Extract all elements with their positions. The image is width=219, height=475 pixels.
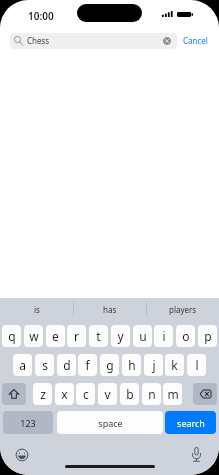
staticText: 10:00 — [28, 9, 54, 23]
button[interactable]: space — [57, 411, 163, 434]
button[interactable] — [10, 33, 177, 49]
staticText: Cancel — [183, 35, 208, 46]
staticText: b — [126, 386, 134, 402]
button[interactable]: o — [176, 325, 195, 347]
staticText: y — [117, 328, 124, 344]
staticText: 123 — [20, 417, 36, 429]
staticText: space — [98, 417, 123, 429]
button[interactable]: d — [57, 354, 76, 376]
button[interactable]: i — [154, 325, 173, 347]
staticText: c — [83, 386, 89, 402]
staticText: h — [128, 357, 136, 373]
button[interactable]: s — [35, 354, 54, 376]
button[interactable]: a — [13, 354, 32, 376]
staticText: a — [19, 357, 26, 373]
button[interactable]: q — [2, 325, 21, 347]
staticText: t — [96, 328, 101, 344]
button[interactable]: v — [98, 383, 117, 405]
staticText: w — [29, 328, 39, 344]
button[interactable]: Backspace — [193, 383, 217, 405]
button[interactable]: x — [55, 383, 74, 405]
staticText: has — [103, 304, 117, 315]
button[interactable]: Dictation — [190, 447, 203, 462]
button[interactable]: Shift — [2, 383, 26, 405]
staticText: j — [152, 357, 156, 373]
button[interactable]: y — [111, 325, 130, 347]
button[interactable]: players — [147, 298, 219, 320]
button[interactable]: u — [133, 325, 152, 347]
button[interactable]: g — [100, 354, 119, 376]
staticText: i — [162, 328, 166, 344]
button[interactable]: Clear text — [163, 37, 171, 45]
staticText: f — [85, 357, 90, 373]
staticText: q — [8, 328, 16, 344]
staticText: r — [74, 328, 79, 344]
button[interactable]: k — [165, 354, 184, 376]
button[interactable]: e — [46, 325, 65, 347]
staticText: s — [42, 357, 48, 373]
button[interactable]: r — [67, 325, 86, 347]
staticText: n — [148, 386, 156, 402]
button[interactable]: j — [144, 354, 163, 376]
staticText: Chess — [27, 35, 50, 46]
button[interactable]: has — [74, 298, 146, 320]
button[interactable]: search — [165, 411, 216, 434]
button[interactable]: Emoji — [15, 448, 29, 462]
staticText: e — [52, 328, 59, 344]
staticText: l — [195, 357, 199, 373]
staticText: d — [63, 357, 71, 373]
button[interactable]: n — [142, 383, 161, 405]
button[interactable]: is — [0, 298, 73, 320]
button[interactable]: t — [89, 325, 108, 347]
staticText: players — [169, 304, 197, 315]
staticText: z — [40, 386, 46, 402]
staticText: m — [167, 386, 179, 402]
button[interactable]: b — [120, 383, 139, 405]
button[interactable]: l — [187, 354, 206, 376]
staticText: p — [204, 328, 212, 344]
button[interactable]: Cancel — [183, 35, 208, 46]
button[interactable]: w — [24, 325, 43, 347]
staticText: search — [177, 417, 205, 429]
staticText: x — [61, 386, 68, 402]
staticText: u — [139, 328, 147, 344]
staticText: is — [34, 304, 40, 315]
button[interactable]: z — [33, 383, 52, 405]
staticText: g — [106, 357, 114, 373]
staticText: v — [104, 386, 111, 402]
button[interactable]: p — [198, 325, 217, 347]
button[interactable]: m — [163, 383, 182, 405]
button[interactable]: c — [76, 383, 95, 405]
staticText: k — [171, 357, 178, 373]
button[interactable]: f — [78, 354, 97, 376]
button[interactable]: h — [122, 354, 141, 376]
button[interactable]: 123 — [3, 411, 53, 434]
staticText: o — [182, 328, 190, 344]
